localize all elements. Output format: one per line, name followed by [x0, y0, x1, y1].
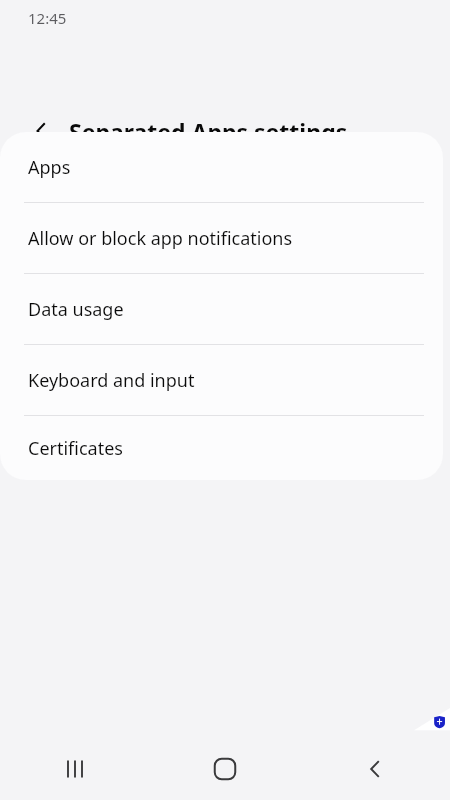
staticText: Separated Apps settings: [69, 116, 348, 147]
button[interactable]: Keyboard and input: [0, 345, 443, 415]
button[interactable]: Allow or block app notifications: [0, 203, 443, 273]
button[interactable]: Recent apps: [0, 737, 150, 800]
button[interactable]: Home: [150, 737, 300, 800]
staticText: Data usage: [28, 297, 124, 322]
button[interactable]: Data usage: [0, 274, 443, 344]
staticText: Certificates: [28, 436, 123, 461]
button[interactable]: Back: [300, 737, 450, 800]
button[interactable]: Certificates: [0, 416, 443, 480]
staticText: Allow or block app notifications: [28, 226, 293, 251]
button[interactable]: Navigate up: [23, 113, 59, 149]
staticText: Keyboard and input: [28, 368, 195, 393]
button[interactable]: Apps: [0, 132, 443, 202]
staticText: Apps: [28, 155, 71, 180]
staticText: 12:45: [28, 8, 67, 28]
